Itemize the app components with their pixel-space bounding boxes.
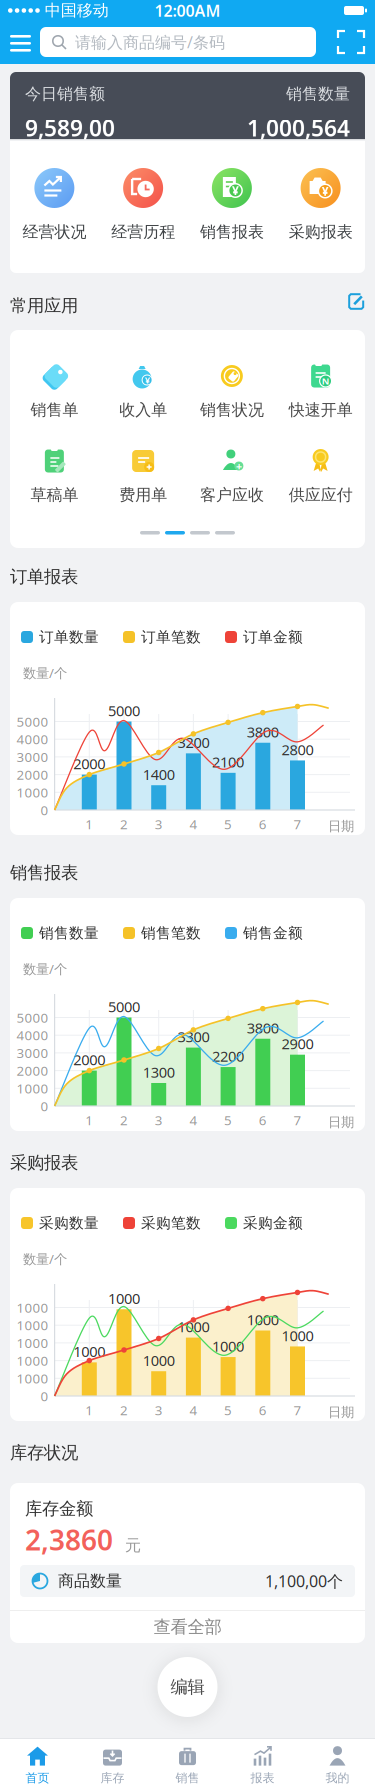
staticText: ¥ [322, 183, 329, 199]
staticText: 我的 [325, 1771, 349, 1785]
staticText: 4 [189, 1401, 197, 1419]
staticText: 销售 [175, 1771, 199, 1785]
staticText: 2100 [212, 752, 244, 772]
staticText: 2,3860 [25, 1521, 113, 1558]
staticText: 中国移动 [45, 1, 109, 20]
staticText: 收入单 [119, 400, 167, 420]
staticText: 订单金额 [243, 628, 303, 646]
staticText: 4 [189, 815, 197, 833]
staticText: 元 [125, 1535, 141, 1555]
staticText: 3200 [177, 733, 209, 752]
staticText: 7 [293, 1401, 301, 1419]
staticText: 5000 [17, 1009, 49, 1026]
staticText: 1,100,00个 [265, 1570, 343, 1592]
staticText: 5000 [17, 713, 49, 730]
staticText: 销售笔数 [141, 924, 201, 942]
staticText: 今日销售额 [25, 84, 105, 104]
staticText: 1000 [17, 1334, 49, 1352]
staticText: 请输入商品编号/条码 [75, 31, 225, 53]
staticText: N [322, 375, 330, 387]
staticText: 库存状况 [10, 1442, 78, 1463]
staticText: 6 [259, 1401, 267, 1419]
staticText: 2 [120, 1111, 128, 1129]
staticText: 数量/个 [23, 664, 67, 682]
staticText: 常用应用 [10, 295, 78, 316]
staticText: 采购金额 [243, 1214, 303, 1232]
staticText: 2000 [73, 1050, 105, 1069]
staticText: 3 [155, 815, 163, 833]
staticText: 6 [259, 1111, 267, 1129]
staticText: 1000 [17, 1079, 49, 1097]
staticText: 日期 [328, 1404, 354, 1420]
staticText: 1000 [17, 1299, 49, 1316]
staticText: 采购报表 [10, 1152, 78, 1173]
staticText: 0 [41, 1387, 49, 1405]
staticText: ¥ [232, 182, 239, 198]
staticText: 数量/个 [23, 1250, 67, 1268]
staticText: 1000 [17, 783, 49, 801]
staticText: 2200 [212, 1046, 244, 1066]
staticText: 9,589,00 [25, 113, 115, 143]
staticText: + [236, 459, 242, 473]
staticText: 1000 [177, 1317, 209, 1336]
staticText: 3 [155, 1401, 163, 1419]
staticText: 快速开单 [289, 400, 353, 420]
staticText: 2800 [281, 740, 313, 759]
staticText: 1,000,564 [247, 113, 350, 143]
staticText: 数量/个 [23, 960, 67, 978]
staticText: 2900 [281, 1034, 313, 1053]
staticText: ¥ [145, 374, 150, 386]
staticText: 0 [41, 1097, 49, 1115]
staticText: 1300 [143, 1062, 175, 1082]
staticText: 3300 [177, 1027, 209, 1046]
staticText: 2000 [17, 766, 49, 783]
staticText: 1000 [17, 1352, 49, 1369]
staticText: 4000 [17, 730, 49, 748]
staticText: 销售数量 [39, 924, 99, 942]
staticText: 1000 [143, 1350, 175, 1370]
staticText: 5000 [108, 701, 140, 720]
staticText: 0 [41, 801, 49, 819]
staticText: 订单报表 [10, 566, 78, 587]
staticText: 查看全部 [153, 1616, 221, 1638]
staticText: 日期 [328, 818, 354, 834]
staticText: 草稿单 [30, 485, 78, 505]
staticText: 客户应收 [200, 485, 264, 505]
staticText: 销售报表 [10, 862, 78, 883]
staticText: 1 [85, 815, 93, 833]
staticText: 经营状况 [22, 222, 86, 242]
staticText: 销售状况 [200, 400, 264, 420]
staticText: 日期 [328, 1114, 354, 1130]
staticText: 1000 [212, 1336, 244, 1356]
staticText: 销售报表 [200, 222, 264, 242]
staticText: 1400 [143, 764, 175, 784]
staticText: 3000 [17, 748, 49, 766]
staticText: 1 [85, 1401, 93, 1419]
staticText: 2000 [17, 1062, 49, 1079]
staticText: 经营历程 [111, 222, 175, 242]
staticText: 7 [293, 815, 301, 833]
staticText: 首页 [25, 1771, 49, 1785]
staticText: 报表 [250, 1771, 274, 1785]
staticText: 1000 [17, 1316, 49, 1334]
staticText: 4000 [17, 1026, 49, 1044]
staticText: 1000 [247, 1310, 279, 1329]
staticText: 采购报表 [289, 222, 353, 242]
staticText: 采购笔数 [141, 1214, 201, 1232]
staticText: 采购数量 [39, 1214, 99, 1232]
staticText: 1 [85, 1111, 93, 1129]
staticText: 1000 [281, 1326, 313, 1345]
staticText: 销售数量 [286, 84, 350, 104]
staticText: 4 [189, 1111, 197, 1129]
staticText: 7 [293, 1111, 301, 1129]
staticText: 销售金额 [243, 924, 303, 942]
staticText: 3000 [17, 1044, 49, 1062]
staticText: 12:00AM [154, 0, 220, 21]
staticText: 1000 [108, 1288, 140, 1308]
staticText: 3800 [247, 1018, 279, 1037]
staticText: 2 [120, 1401, 128, 1419]
staticText: 费用单 [119, 485, 167, 505]
staticText: 订单笔数 [141, 628, 201, 646]
staticText: 3800 [247, 722, 279, 741]
staticText: 编辑 [170, 1676, 204, 1698]
